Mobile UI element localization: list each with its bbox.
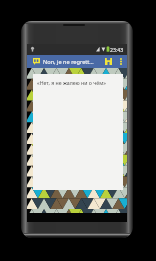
staticText: «Нет, я не жалею ни о чём» xyxy=(37,79,106,86)
staticText: Non, je ne regrett… xyxy=(43,58,102,66)
button[interactable]: Save xyxy=(102,55,114,68)
button[interactable]: More options xyxy=(114,55,127,68)
button[interactable]: «Нет, я не жалею ни о чём» xyxy=(33,74,123,190)
staticText: 23:43 xyxy=(110,46,124,53)
